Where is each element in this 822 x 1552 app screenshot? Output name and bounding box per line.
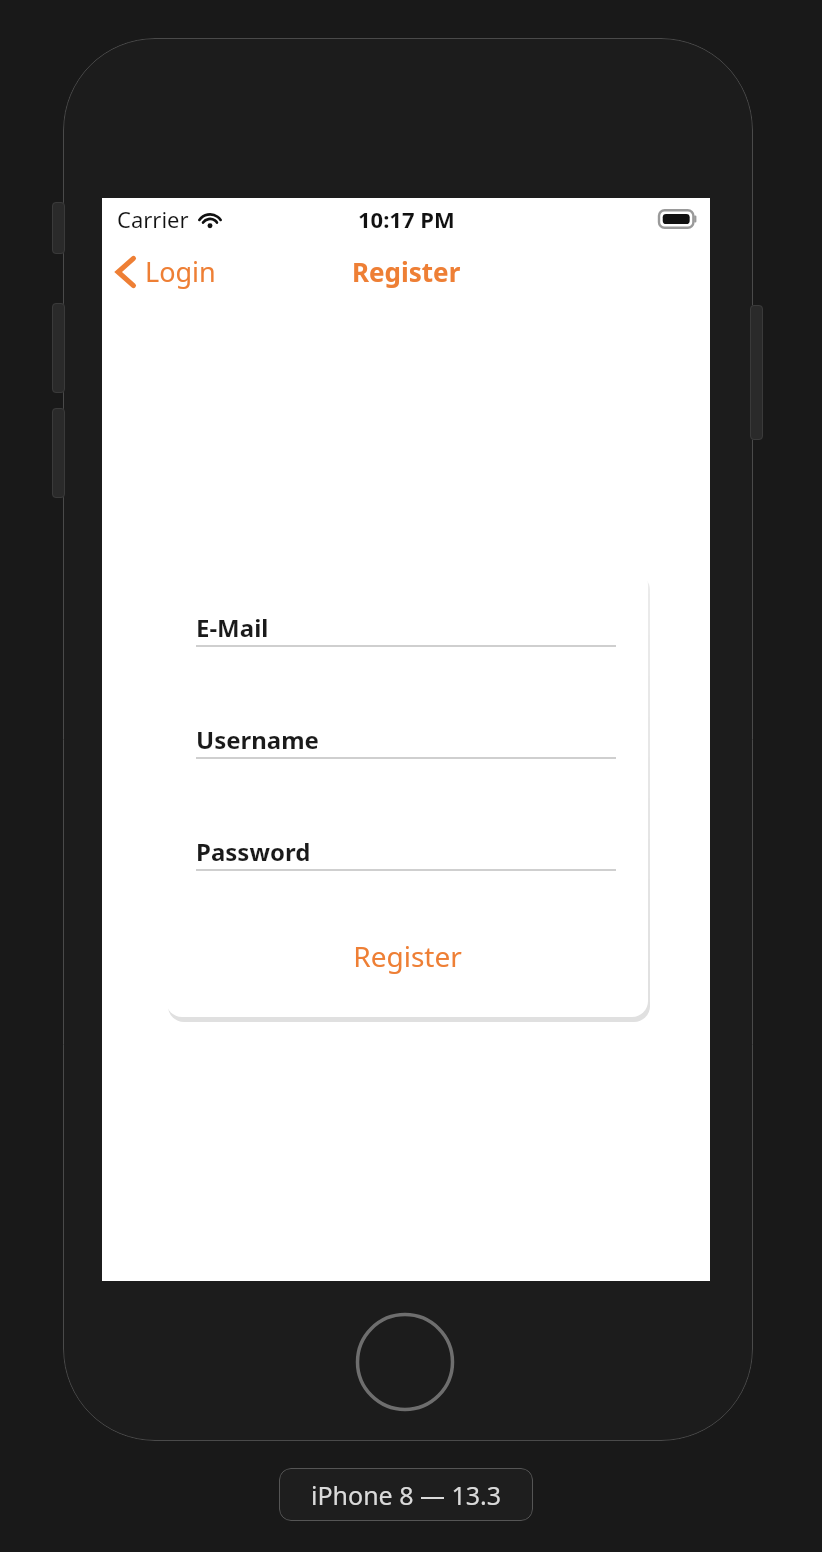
button[interactable]: Home xyxy=(355,1312,455,1412)
staticText: Register xyxy=(353,937,462,975)
staticText: Register xyxy=(352,254,461,289)
staticText: E-Mail xyxy=(196,611,269,644)
button[interactable]: E-Mail xyxy=(166,569,648,681)
staticText: Login xyxy=(145,253,216,290)
staticText: 10:17 PM xyxy=(358,204,455,234)
staticText: Username xyxy=(196,723,319,756)
button[interactable]: Username xyxy=(166,681,648,793)
button[interactable]: Login xyxy=(102,247,226,296)
staticText: Carrier xyxy=(117,204,189,234)
button[interactable]: Password xyxy=(166,793,648,905)
staticText: Password xyxy=(196,835,311,868)
staticText: iPhone 8 — 13.3 xyxy=(311,1478,502,1512)
button[interactable]: Register xyxy=(166,905,648,1017)
